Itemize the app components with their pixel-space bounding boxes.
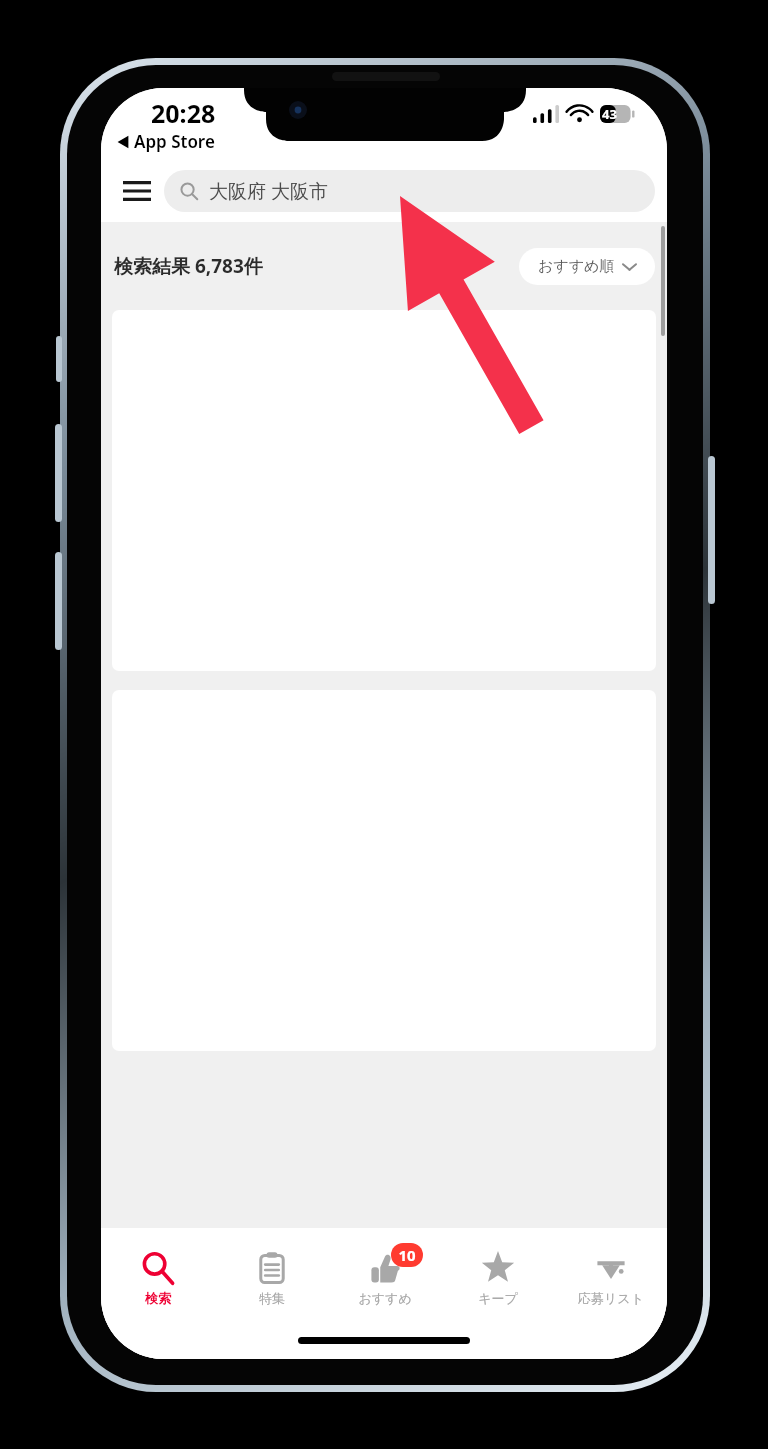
button[interactable]: 大阪府 大阪市 xyxy=(164,170,655,212)
staticText: おすすめ順 xyxy=(538,257,615,276)
staticText: 特集 xyxy=(259,1290,285,1306)
staticText: 検索結果 6,783件 xyxy=(114,253,263,279)
button[interactable]: 特集 xyxy=(215,1245,328,1312)
staticText: 検索 xyxy=(145,1290,171,1306)
staticText: キープ xyxy=(478,1290,518,1306)
staticText: App Store xyxy=(134,130,215,153)
staticText: おすすめ xyxy=(358,1290,412,1306)
staticText: 20:28 xyxy=(151,96,216,130)
button[interactable]: メニュー xyxy=(113,167,161,215)
button[interactable]: おすすめ順 xyxy=(519,248,655,285)
button[interactable]: 検索 xyxy=(101,1245,215,1312)
button[interactable]: 応募リスト xyxy=(554,1245,667,1312)
button[interactable]: キープ xyxy=(441,1245,554,1312)
button[interactable]: 10 xyxy=(328,1245,441,1312)
staticText: 大阪府 大阪市 xyxy=(209,178,328,204)
staticText: 43 xyxy=(602,105,617,123)
button[interactable] xyxy=(112,310,656,671)
staticText: 応募リスト xyxy=(578,1290,644,1306)
button[interactable]: App Store xyxy=(113,128,219,155)
staticText: 10 xyxy=(398,1245,416,1265)
